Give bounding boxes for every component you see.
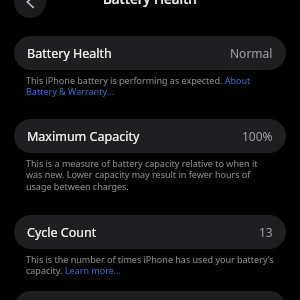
button[interactable]: Cycle Count	[14, 215, 286, 249]
button[interactable]: Battery Health	[14, 36, 286, 70]
staticText: Normal	[230, 45, 273, 61]
staticText: This is a measure of battery capacity re…	[26, 157, 276, 193]
staticText: Cycle Count	[27, 224, 97, 241]
button[interactable]: This is the number of times iPhone has u…	[26, 253, 276, 277]
staticText: Battery Health	[27, 45, 112, 62]
staticText: 13	[259, 224, 273, 240]
staticText: This iPhone battery is performing as exp…	[26, 74, 276, 98]
button[interactable]	[14, 291, 286, 300]
button[interactable]: This iPhone battery is performing as exp…	[26, 74, 276, 98]
button[interactable]: Maximum Capacity	[14, 119, 286, 153]
staticText: Battery Health	[103, 0, 197, 8]
staticText: This is the number of times iPhone has u…	[26, 253, 276, 277]
staticText: 100%	[242, 128, 273, 144]
button[interactable]: This is a measure of battery capacity re…	[26, 157, 276, 193]
button[interactable]: Back	[14, 0, 46, 18]
staticText: Maximum Capacity	[27, 128, 140, 145]
